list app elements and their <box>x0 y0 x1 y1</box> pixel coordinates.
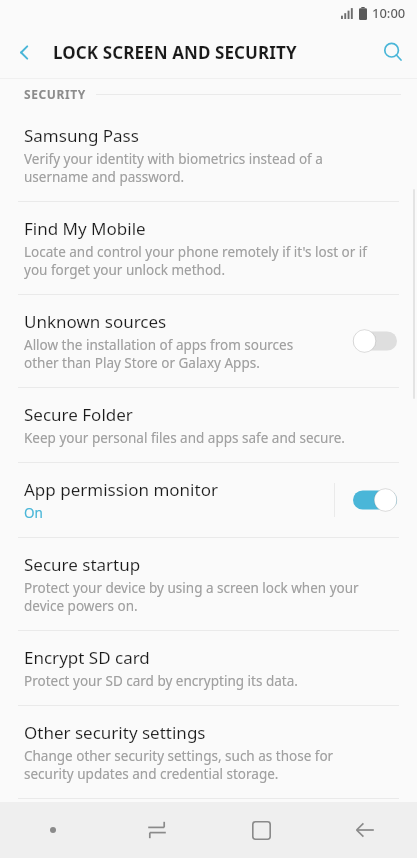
button[interactable]: Encrypt SD card <box>0 631 417 705</box>
staticText: Secure Folder <box>24 403 133 426</box>
button[interactable]: Samsung Pass <box>0 109 417 201</box>
staticText: On <box>24 504 43 522</box>
button[interactable]: App permission monitor <box>0 463 417 537</box>
staticText: Keep your personal files and apps safe a… <box>24 429 345 447</box>
staticText: Find My Mobile <box>24 217 146 240</box>
staticText: Change other security settings, such as … <box>24 747 334 783</box>
staticText: Protect your device by using a screen lo… <box>24 579 359 615</box>
staticText: SECURITY <box>24 86 86 102</box>
button[interactable]: Home <box>209 802 313 858</box>
button[interactable]: Search <box>369 28 417 76</box>
staticText: 10:00 <box>372 4 406 22</box>
button[interactable]: Secure startup <box>0 538 417 630</box>
staticText: Other security settings <box>24 721 206 744</box>
button[interactable]: Unknown sources toggle <box>349 325 401 357</box>
staticText: Unknown sources <box>24 310 167 333</box>
button[interactable]: Secure Folder <box>0 388 417 462</box>
button[interactable]: Hide navigation bar <box>0 802 105 858</box>
staticText: LOCK SCREEN AND SECURITY <box>53 41 297 64</box>
staticText: Samsung Pass <box>24 124 139 147</box>
button[interactable]: Recents <box>105 802 209 858</box>
staticText: Encrypt SD card <box>24 646 150 669</box>
button[interactable]: Back <box>0 28 48 76</box>
staticText: App permission monitor <box>24 478 218 501</box>
button[interactable]: Back <box>313 802 417 858</box>
staticText: Protect your SD card by encrypting its d… <box>24 672 298 690</box>
button[interactable]: Unknown sources <box>0 295 417 387</box>
staticText: Verify your identity with biometrics ins… <box>24 150 323 186</box>
button[interactable]: Other security settings <box>0 706 417 798</box>
staticText: Secure startup <box>24 553 141 576</box>
button[interactable]: App permission monitor toggle <box>349 484 401 516</box>
staticText: Allow the installation of apps from sour… <box>24 336 294 372</box>
button[interactable]: Find My Mobile <box>0 202 417 294</box>
staticText: Locate and control your phone remotely i… <box>24 243 367 279</box>
